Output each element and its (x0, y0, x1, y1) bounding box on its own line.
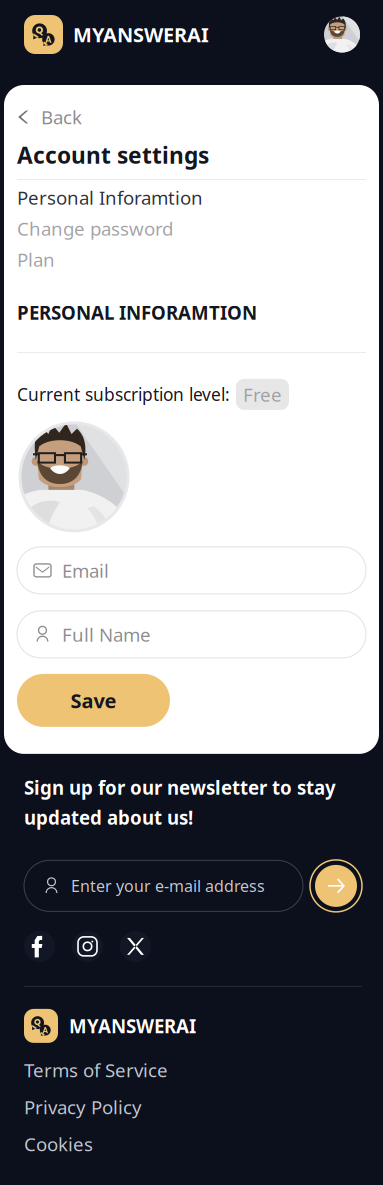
button[interactable]: Subscribe (310, 860, 362, 912)
button[interactable]: Terms of Service (24, 1060, 362, 1080)
button[interactable]: Facebook (24, 931, 55, 962)
button[interactable]: Full Name (17, 611, 366, 658)
button[interactable]: Save (17, 674, 170, 727)
button[interactable]: X (120, 931, 151, 962)
staticText: MYANSWERAI (73, 21, 209, 48)
button[interactable]: Change password (17, 218, 366, 239)
staticText: Full Name (62, 622, 151, 647)
staticText: Change password (17, 216, 173, 241)
staticText: Personal Inforamtion (17, 185, 203, 210)
staticText: updated about us! (24, 805, 193, 830)
button[interactable]: Instagram (72, 931, 103, 962)
staticText: Current subscription level: (17, 383, 230, 406)
button[interactable]: Privacy Policy (24, 1097, 362, 1117)
staticText: Plan (17, 247, 55, 272)
button[interactable]: Account (324, 16, 360, 52)
button[interactable]: Cookies (24, 1134, 362, 1154)
staticText: Cookies (24, 1131, 93, 1156)
staticText: MYANSWERAI (69, 1013, 196, 1038)
staticText: Privacy Policy (24, 1094, 142, 1119)
button[interactable]: Back (17, 107, 366, 127)
staticText: Account settings (17, 140, 209, 170)
staticText: Back (41, 105, 82, 129)
staticText: Sign up for our newsletter to stay (24, 775, 336, 800)
staticText: Terms of Service (24, 1057, 168, 1082)
button[interactable]: Plan (17, 249, 366, 270)
staticText: Save (70, 687, 116, 714)
button[interactable]: MYANSWERAI (24, 15, 209, 54)
staticText: PERSONAL INFORAMTION (17, 300, 257, 325)
staticText: Free (243, 382, 282, 407)
button[interactable]: Enter your e-mail address (24, 860, 303, 911)
staticText: Email (62, 558, 109, 583)
button[interactable]: Email (17, 547, 366, 594)
button[interactable]: Personal Inforamtion (17, 187, 366, 208)
staticText: Enter your e-mail address (71, 875, 265, 896)
